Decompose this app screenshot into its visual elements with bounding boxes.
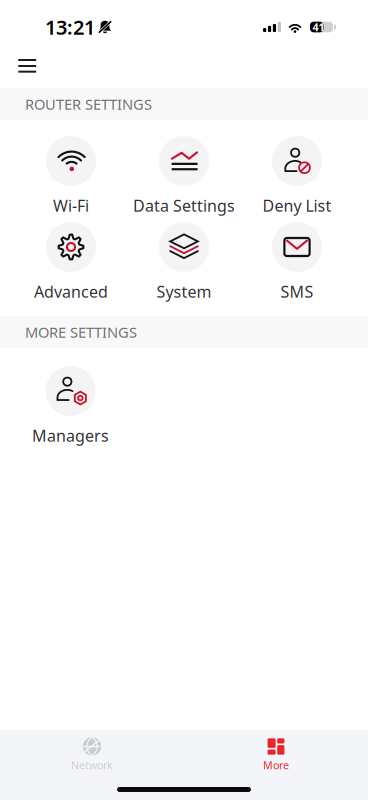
- button[interactable]: Menu: [5, 44, 49, 88]
- button[interactable]: Managers: [14, 366, 127, 452]
- button[interactable]: SMS: [240, 222, 353, 308]
- staticText: Deny List: [262, 195, 331, 216]
- staticText: 41: [313, 20, 325, 34]
- button[interactable]: Wi-Fi: [14, 136, 127, 222]
- button[interactable]: Network: [0, 737, 184, 777]
- staticText: 13:21: [45, 14, 95, 40]
- staticText: MORE SETTINGS: [25, 322, 137, 342]
- staticText: ROUTER SETTINGS: [25, 94, 152, 114]
- staticText: Managers: [32, 425, 109, 446]
- button[interactable]: Deny List: [240, 136, 353, 222]
- staticText: System: [156, 281, 211, 302]
- button[interactable]: Data Settings: [127, 136, 240, 222]
- staticText: More: [263, 758, 289, 772]
- staticText: SMS: [280, 281, 313, 302]
- button[interactable]: More: [184, 737, 368, 777]
- staticText: Advanced: [34, 281, 108, 302]
- staticText: Network: [71, 758, 113, 772]
- staticText: Wi-Fi: [53, 195, 89, 216]
- staticText: Data Settings: [133, 195, 235, 216]
- button[interactable]: System: [127, 222, 240, 308]
- button[interactable]: Advanced: [14, 222, 127, 308]
